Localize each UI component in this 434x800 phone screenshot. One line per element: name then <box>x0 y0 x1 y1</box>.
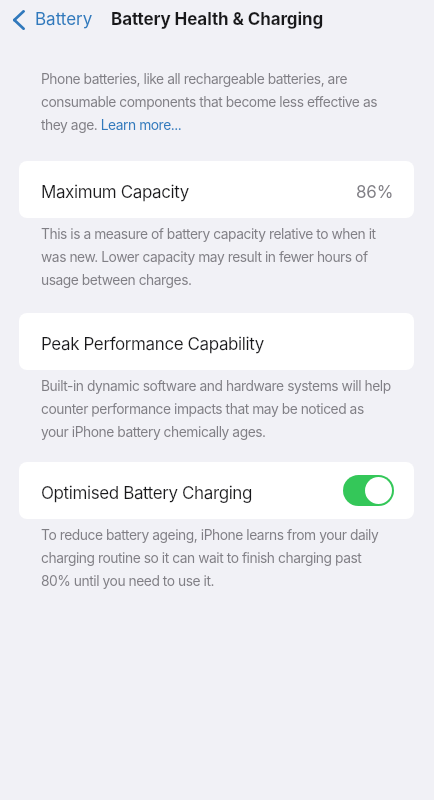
staticText: Peak Performance Capability <box>41 334 264 355</box>
button[interactable]: Back to Battery <box>0 4 103 35</box>
other: Back to Battery <box>13 10 25 30</box>
staticText: Phone batteries, like all rechargeable b… <box>41 65 394 134</box>
staticText: Battery <box>35 9 93 30</box>
staticText: Optimised Battery Charging <box>41 483 253 504</box>
staticText: Built-in dynamic software and hardware s… <box>41 372 394 441</box>
button[interactable]: Peak Performance Capability <box>19 313 414 370</box>
button[interactable]: Optimised Battery Charging <box>19 462 414 519</box>
staticText: 86% <box>356 182 394 203</box>
staticText: To reduce battery ageing, iPhone learns … <box>41 521 394 590</box>
button[interactable]: Maximum Capacity <box>19 161 414 218</box>
staticText: This is a measure of battery capacity re… <box>41 220 394 289</box>
button[interactable]: Optimised Battery Charging <box>343 475 394 506</box>
staticText: Battery Health & Charging <box>111 9 324 30</box>
staticText: Maximum Capacity <box>41 182 189 203</box>
